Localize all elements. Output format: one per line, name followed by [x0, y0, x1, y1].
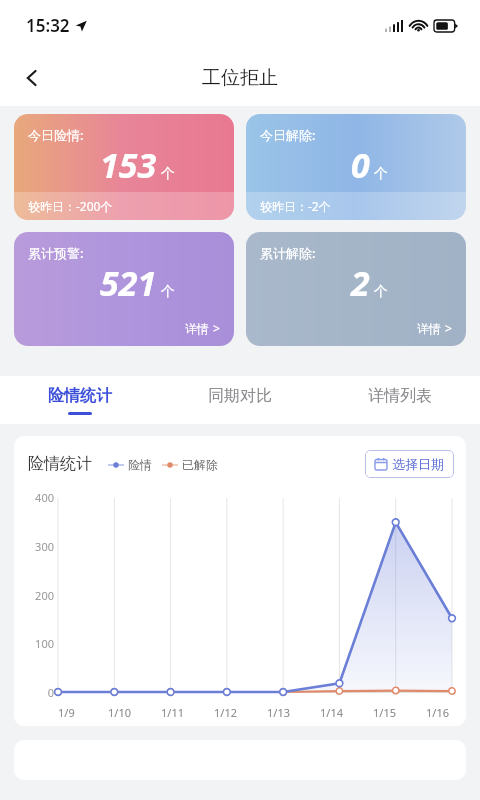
staticText: 1/15 — [373, 705, 396, 720]
staticText: 选择日期 — [392, 456, 444, 472]
staticText: 工位拒止 — [202, 66, 278, 90]
staticText: 1/10 — [108, 705, 131, 720]
button[interactable]: 累计解除: — [246, 232, 466, 346]
staticText: 较昨日：-2个 — [260, 198, 331, 214]
staticText: 详情 — [417, 321, 441, 336]
button[interactable]: 险情统计 — [0, 376, 160, 424]
button[interactable]: 累计预警: — [14, 232, 234, 346]
staticText: 1/11 — [161, 705, 184, 720]
staticText: 详情列表 — [368, 386, 432, 406]
staticText: 累计解除: — [260, 244, 316, 262]
staticText: 详情 — [185, 321, 209, 336]
staticText: 个 — [374, 165, 388, 183]
button[interactable]: 今日险情: — [14, 114, 234, 220]
staticText: 0 — [47, 685, 54, 700]
staticText: 险情 — [128, 457, 152, 472]
staticText: 100 — [35, 636, 54, 651]
staticText: 累计预警: — [28, 244, 84, 262]
button[interactable]: Back — [10, 56, 54, 100]
staticText: 个 — [161, 283, 175, 301]
staticText: 较昨日：-200个 — [28, 198, 113, 214]
button[interactable]: 同期对比 — [160, 376, 320, 424]
staticText: 1/9 — [58, 705, 75, 720]
staticText: 1/16 — [426, 705, 449, 720]
staticText: 险情统计 — [48, 386, 112, 406]
staticText: 2 — [351, 260, 370, 306]
staticText: 已解除 — [182, 457, 218, 472]
staticText: 521 — [100, 260, 157, 306]
staticText: 1/14 — [320, 705, 343, 720]
staticText: 0 — [351, 142, 370, 188]
staticText: 1/12 — [214, 705, 237, 720]
staticText: 同期对比 — [208, 386, 272, 406]
button[interactable]: 今日解除: — [246, 114, 466, 220]
staticText: 个 — [161, 165, 175, 183]
button[interactable]: 选择日期 — [365, 450, 454, 478]
button[interactable]: 详情列表 — [320, 376, 480, 424]
staticText: 15:32 — [26, 14, 70, 37]
staticText: > — [213, 320, 220, 336]
staticText: 300 — [35, 539, 54, 554]
staticText: 今日险情: — [28, 126, 84, 144]
staticText: 个 — [374, 283, 388, 301]
staticText: 153 — [100, 142, 157, 188]
staticText: > — [445, 320, 452, 336]
staticText: 400 — [35, 490, 54, 505]
staticText: 1/13 — [267, 705, 290, 720]
staticText: 200 — [35, 588, 54, 603]
staticText: 今日解除: — [260, 126, 316, 144]
staticText: 险情统计 — [28, 454, 92, 474]
